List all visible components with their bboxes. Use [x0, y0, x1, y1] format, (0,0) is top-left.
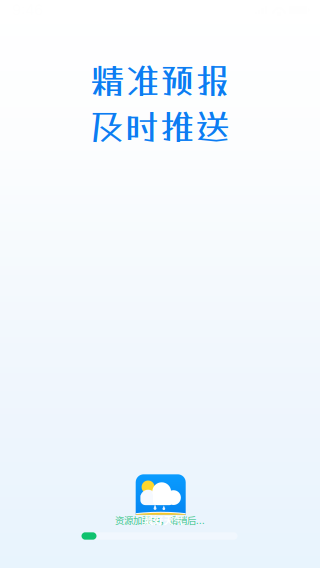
staticText: 精准预报 — [90, 60, 230, 101]
staticText: 及时推送 — [90, 106, 230, 147]
staticText: 资源加载中，请稍后... — [115, 513, 205, 527]
staticText: 最好天气 — [143, 513, 183, 527]
